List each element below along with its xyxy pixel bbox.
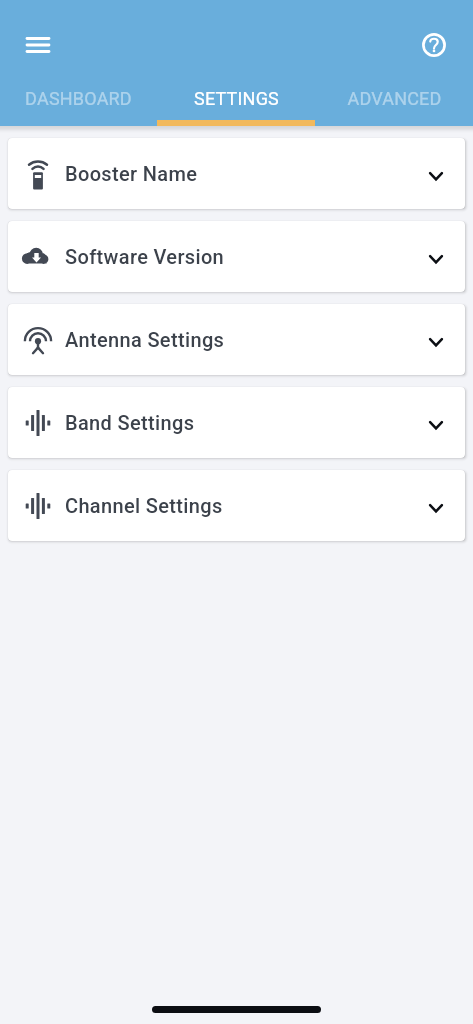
button[interactable]: DASHBOARD <box>0 78 157 126</box>
button[interactable]: Menu <box>14 21 62 69</box>
button[interactable]: Software Version <box>8 221 465 292</box>
button[interactable]: Booster Name <box>8 138 465 209</box>
staticText: Channel Settings <box>65 494 223 517</box>
staticText: Band Settings <box>65 411 195 434</box>
staticText: DASHBOARD <box>25 88 132 109</box>
button[interactable]: Help <box>412 23 456 67</box>
staticText: Software Version <box>65 245 225 268</box>
staticText: Booster Name <box>65 162 198 185</box>
button[interactable]: Antenna Settings <box>8 304 465 375</box>
staticText: SETTINGS <box>194 88 279 109</box>
button[interactable]: ADVANCED <box>315 78 473 126</box>
staticText: Antenna Settings <box>65 328 225 351</box>
button[interactable]: SETTINGS <box>157 78 315 126</box>
button[interactable]: Band Settings <box>8 387 465 458</box>
button[interactable]: Channel Settings <box>8 470 465 541</box>
staticText: ADVANCED <box>347 88 442 109</box>
